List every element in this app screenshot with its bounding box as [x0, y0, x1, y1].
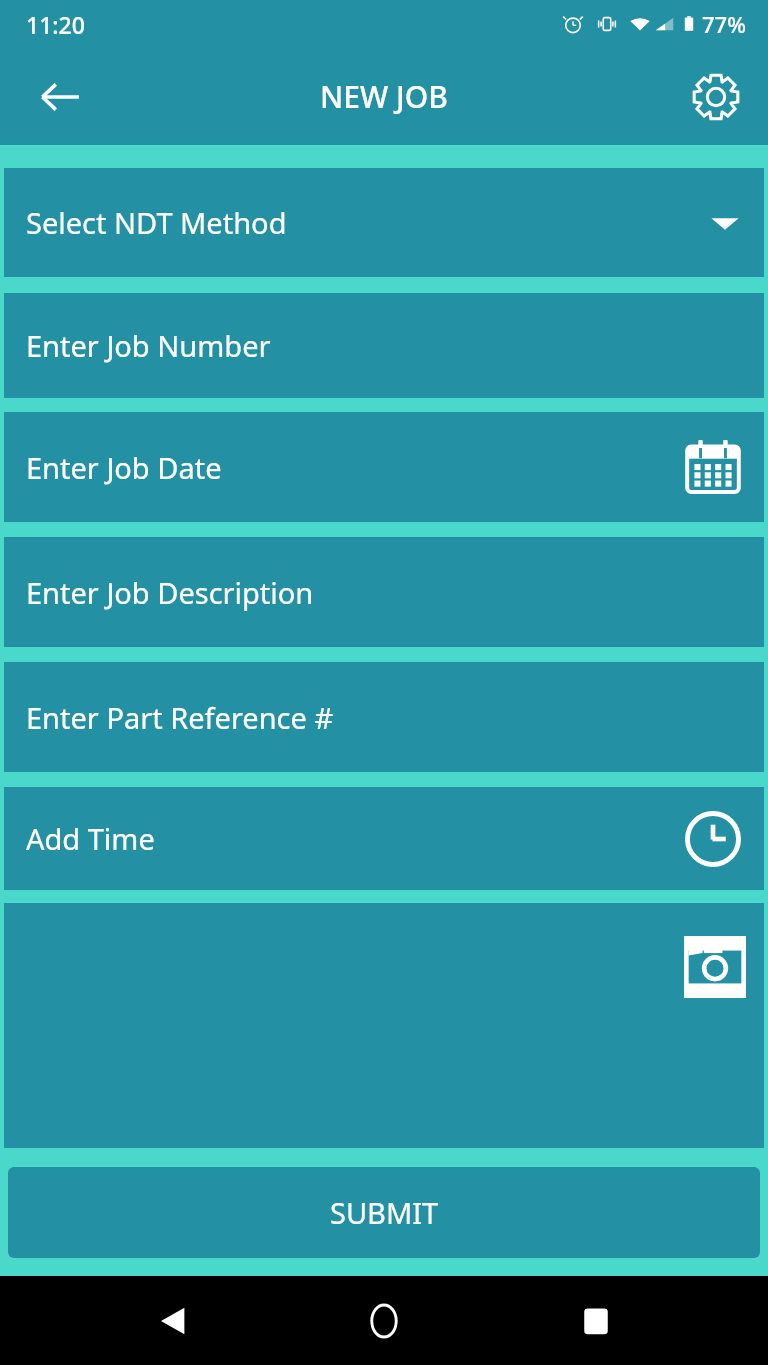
staticText: Add Time — [26, 819, 155, 858]
button[interactable]: SUBMIT — [8, 1167, 760, 1258]
staticText: Enter Part Reference # — [26, 698, 334, 737]
button[interactable]: Settings — [680, 61, 752, 133]
staticText: Enter Job Date — [26, 448, 222, 487]
button[interactable]: Back — [134, 1282, 212, 1360]
button[interactable]: Take photo — [4, 903, 764, 1148]
button[interactable]: Enter Job Description — [4, 537, 764, 647]
staticText: Enter Job Number — [26, 326, 271, 365]
button[interactable]: Add Time — [4, 787, 764, 890]
button[interactable]: Enter Part Reference # — [4, 662, 764, 772]
button[interactable]: Enter Job Number — [4, 293, 764, 398]
staticText: SUBMIT — [330, 1193, 439, 1232]
button[interactable]: Enter Job Date — [4, 412, 764, 522]
button[interactable]: Back — [26, 63, 94, 131]
staticText: 11:20 — [26, 9, 85, 40]
button[interactable]: Select NDT Method — [4, 168, 764, 277]
staticText: NEW JOB — [320, 76, 448, 117]
staticText: Select NDT Method — [26, 203, 287, 242]
button[interactable]: Take photo — [684, 936, 746, 998]
button[interactable]: Recents — [557, 1282, 635, 1360]
button[interactable]: Home — [345, 1282, 423, 1360]
staticText: Enter Job Description — [26, 573, 314, 612]
staticText: 77% — [702, 9, 746, 39]
